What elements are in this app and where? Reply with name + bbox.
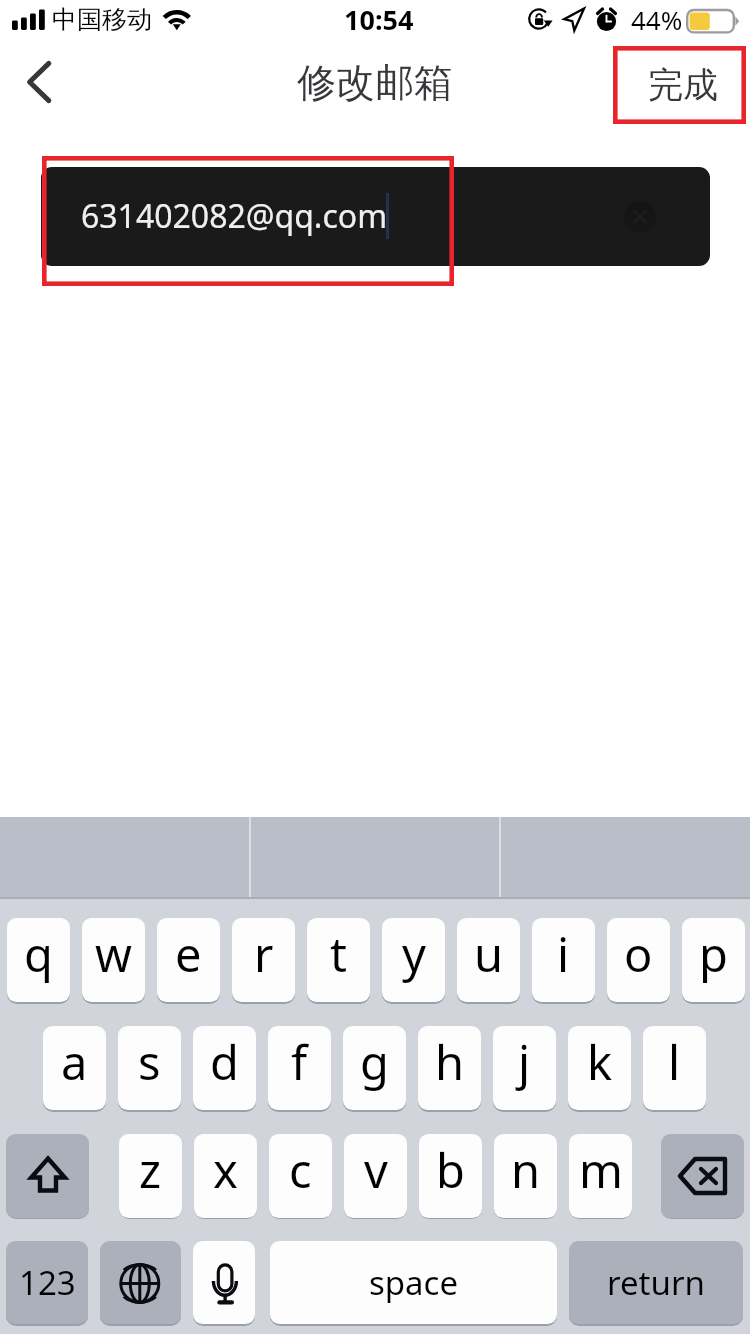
- staticText: p: [699, 922, 728, 986]
- button[interactable]: 631402082@qq.com: [41, 167, 710, 266]
- staticText: 631402082@qq.com: [81, 194, 388, 238]
- staticText: 完成: [648, 63, 718, 107]
- staticText: g: [360, 1030, 389, 1094]
- staticText: 10:54: [344, 1, 414, 38]
- button[interactable]: k: [568, 1026, 631, 1110]
- button[interactable]: j: [493, 1026, 556, 1110]
- button[interactable]: v: [344, 1134, 407, 1218]
- staticText: a: [61, 1030, 88, 1094]
- button[interactable]: space: [270, 1241, 557, 1324]
- button[interactable]: l: [643, 1026, 706, 1110]
- button[interactable]: w: [82, 918, 145, 1002]
- button[interactable]: 123: [6, 1241, 88, 1324]
- staticText: space: [369, 1260, 459, 1305]
- button[interactable]: u: [457, 918, 520, 1002]
- staticText: 中国移动: [52, 4, 152, 35]
- button[interactable]: s: [118, 1026, 181, 1110]
- staticText: 修改邮箱: [297, 58, 453, 107]
- staticText: c: [289, 1138, 312, 1202]
- staticText: s: [138, 1030, 161, 1094]
- button[interactable]: q: [7, 918, 70, 1002]
- staticText: q: [24, 922, 53, 986]
- staticText: h: [435, 1030, 465, 1094]
- staticText: 44%: [631, 2, 683, 37]
- staticText: v: [364, 1138, 388, 1202]
- button[interactable]: Dictate: [193, 1241, 255, 1324]
- button[interactable]: c: [269, 1134, 332, 1218]
- button[interactable]: t: [307, 918, 370, 1002]
- staticText: l: [668, 1030, 681, 1094]
- staticText: w: [95, 922, 132, 986]
- staticText: 123: [19, 1260, 76, 1305]
- button[interactable]: Shift: [6, 1134, 89, 1218]
- button[interactable]: Switch keyboard: [100, 1241, 181, 1324]
- staticText: return: [607, 1260, 705, 1305]
- staticText: x: [213, 1138, 238, 1202]
- button[interactable]: n: [494, 1134, 557, 1218]
- staticText: i: [557, 922, 570, 986]
- button[interactable]: i: [532, 918, 595, 1002]
- staticText: u: [474, 922, 504, 986]
- staticText: n: [511, 1138, 541, 1202]
- button[interactable]: y: [382, 918, 445, 1002]
- staticText: k: [587, 1030, 613, 1094]
- button[interactable]: b: [419, 1134, 482, 1218]
- button[interactable]: a: [43, 1026, 106, 1110]
- staticText: z: [139, 1138, 162, 1202]
- button[interactable]: o: [607, 918, 670, 1002]
- staticText: y: [402, 922, 426, 986]
- button[interactable]: r: [232, 918, 295, 1002]
- button[interactable]: x: [194, 1134, 257, 1218]
- staticText: d: [210, 1030, 239, 1094]
- button[interactable]: m: [569, 1134, 632, 1218]
- button[interactable]: return: [569, 1241, 743, 1324]
- button[interactable]: d: [193, 1026, 256, 1110]
- staticText: o: [624, 922, 653, 986]
- staticText: t: [330, 922, 347, 986]
- button[interactable]: f: [268, 1026, 331, 1110]
- button[interactable]: h: [418, 1026, 481, 1110]
- button[interactable]: Back: [0, 40, 92, 130]
- staticText: b: [436, 1138, 465, 1202]
- staticText: f: [291, 1030, 308, 1094]
- button[interactable]: Backspace: [661, 1134, 744, 1218]
- staticText: j: [518, 1030, 531, 1094]
- staticText: r: [254, 922, 274, 986]
- button[interactable]: e: [157, 918, 220, 1002]
- button[interactable]: 完成: [614, 46, 746, 124]
- button[interactable]: p: [682, 918, 745, 1002]
- button[interactable]: z: [119, 1134, 182, 1218]
- button[interactable]: g: [343, 1026, 406, 1110]
- staticText: m: [579, 1138, 623, 1202]
- staticText: e: [175, 922, 202, 986]
